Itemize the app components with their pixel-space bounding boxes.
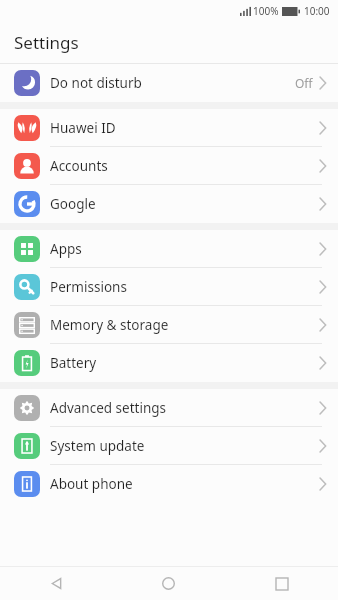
staticText: Do not disturb [50,74,142,92]
staticText: Memory & storage [50,316,169,334]
button[interactable]: Accounts [0,147,338,185]
button[interactable]: Home [112,567,225,600]
button[interactable]: Apps [0,230,338,268]
staticText: 10:00 [304,4,330,18]
staticText: 100% [253,4,279,18]
button[interactable]: System update [0,427,338,465]
staticText: Off [295,75,313,91]
button[interactable]: Memory & storage [0,306,338,344]
staticText: Google [50,195,96,213]
button[interactable]: Huawei ID [0,109,338,147]
staticText: Battery [50,354,97,372]
button[interactable]: Do not disturb [0,64,338,102]
staticText: Settings [14,31,79,54]
button[interactable]: Permissions [0,268,338,306]
staticText: Advanced settings [50,399,167,417]
button[interactable]: Battery [0,344,338,382]
button[interactable]: Back [0,567,112,600]
staticText: About phone [50,475,133,493]
button[interactable]: About phone [0,465,338,503]
button[interactable]: Advanced settings [0,389,338,427]
staticText: Accounts [50,157,108,175]
button[interactable]: Google [0,185,338,223]
button[interactable]: Recents [225,567,338,600]
staticText: Permissions [50,278,127,296]
staticText: Apps [50,240,82,258]
staticText: System update [50,437,145,455]
staticText: Huawei ID [50,119,116,137]
